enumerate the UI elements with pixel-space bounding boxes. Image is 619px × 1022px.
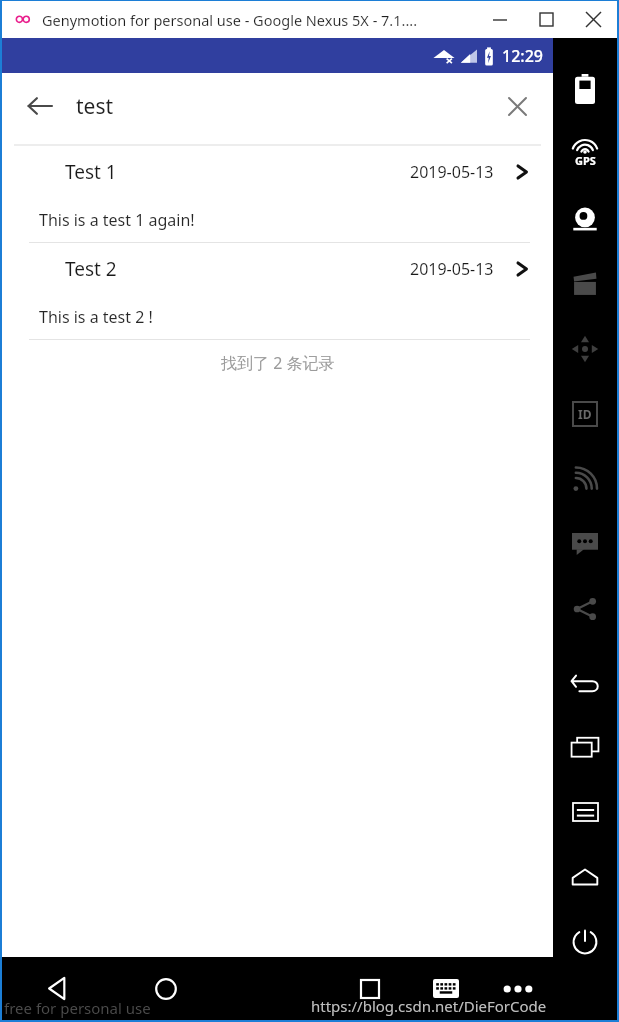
staticText: Test 1 xyxy=(65,159,117,185)
button[interactable]: Keyboard xyxy=(409,957,483,1020)
staticText: 找到了 2 条记录 xyxy=(221,352,335,374)
button[interactable]: Network xyxy=(553,446,617,511)
staticText: 2019-05-13 xyxy=(410,258,494,280)
button[interactable]: Clear search xyxy=(493,82,541,130)
staticText: Genymotion for personal use - Google Nex… xyxy=(42,10,418,30)
staticText: ID xyxy=(578,406,592,422)
button[interactable]: Recents xyxy=(553,714,617,779)
staticText: 2019-05-13 xyxy=(410,161,494,183)
button[interactable]: Back xyxy=(14,80,66,132)
button[interactable]: Accelerometer xyxy=(553,316,617,381)
button[interactable]: More options xyxy=(483,957,553,1020)
button[interactable]: Share xyxy=(553,576,617,641)
staticText: This is a test 2 ! xyxy=(39,306,153,328)
button[interactable]: Camera xyxy=(553,186,617,251)
button[interactable]: Recents xyxy=(331,957,409,1020)
button[interactable]: Home xyxy=(111,957,221,1020)
button[interactable]: Video xyxy=(553,251,617,316)
staticText: test xyxy=(76,92,114,121)
staticText: 12:29 xyxy=(502,45,543,67)
staticText: Test 2 xyxy=(65,256,117,282)
button[interactable]: Close xyxy=(569,1,617,38)
staticText: GPS xyxy=(575,153,596,168)
button[interactable]: Power xyxy=(553,909,617,974)
button[interactable]: Identifiers xyxy=(553,381,617,446)
button[interactable]: GPS xyxy=(553,121,617,186)
button[interactable]: Test 1 xyxy=(2,146,553,242)
button[interactable]: Menu xyxy=(553,779,617,844)
button[interactable]: SMS xyxy=(553,511,617,576)
button[interactable]: Maximize xyxy=(523,1,569,38)
button[interactable]: Back xyxy=(553,649,617,714)
staticText: free for personal use xyxy=(4,998,151,1018)
button[interactable]: Test 2 xyxy=(2,243,553,339)
button[interactable]: Home xyxy=(553,844,617,909)
button[interactable]: Minimize xyxy=(477,1,523,38)
staticText: This is a test 1 again! xyxy=(39,209,195,231)
staticText: https://blog.csdn.net/DieForCode xyxy=(311,996,547,1016)
button[interactable]: Back xyxy=(2,957,111,1020)
button[interactable]: Battery xyxy=(553,56,617,121)
